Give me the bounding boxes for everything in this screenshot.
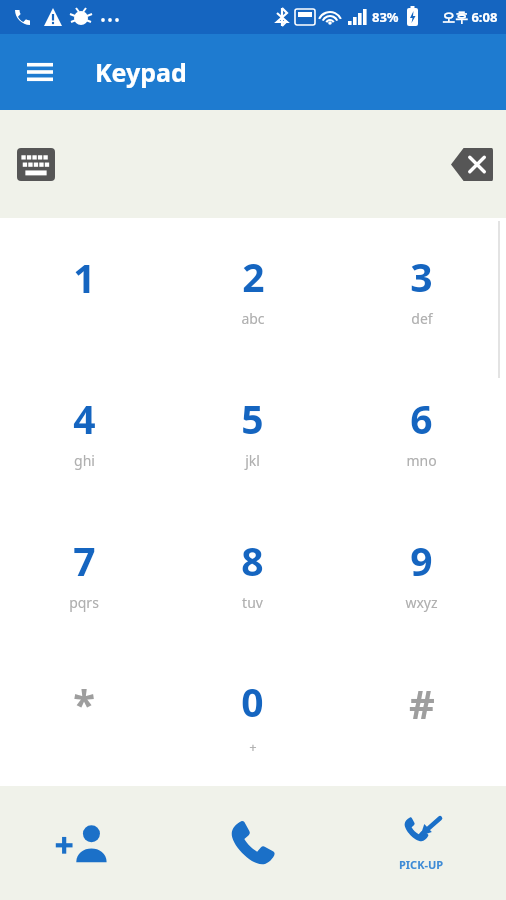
staticText: PICK-UP [399, 857, 444, 872]
staticText: 0 [241, 675, 264, 728]
button[interactable]: 6 [337, 360, 506, 502]
staticText: wxyz [405, 593, 438, 612]
staticText: 5 [241, 392, 264, 445]
button[interactable]: 8 [168, 502, 337, 644]
staticText: Keypad [95, 55, 187, 89]
button[interactable]: 4 [0, 360, 168, 502]
staticText: 83% [372, 8, 399, 26]
staticText: # [409, 676, 435, 730]
button[interactable]: Backspace [446, 138, 498, 190]
button[interactable]: 7 [0, 502, 168, 644]
button[interactable]: 5 [168, 360, 337, 502]
staticText: 오후 6:08 [442, 8, 498, 26]
staticText: mno [406, 451, 437, 470]
staticText: 4 [73, 392, 96, 445]
staticText: 2 [242, 250, 265, 303]
button[interactable]: Pick up call [337, 786, 506, 900]
button[interactable]: 9 [337, 502, 506, 644]
staticText: tuv [242, 593, 263, 612]
staticText: ghi [74, 451, 95, 470]
staticText: 9 [410, 534, 433, 587]
button[interactable]: Show keyboard [10, 138, 62, 190]
staticText: jkl [245, 451, 260, 470]
button[interactable]: Open navigation menu [16, 48, 64, 96]
staticText: abc [241, 309, 265, 328]
button[interactable]: Call [168, 786, 337, 900]
staticText: 1 [73, 251, 96, 304]
staticText: * [73, 676, 95, 730]
staticText: 6 [410, 392, 433, 445]
staticText: 8 [241, 534, 264, 587]
button[interactable]: 2 [168, 218, 337, 360]
staticText: def [411, 309, 433, 328]
staticText: pqrs [69, 593, 99, 612]
button[interactable]: 3 [337, 218, 506, 360]
button[interactable]: Add contact [0, 786, 168, 900]
staticText: + [249, 738, 257, 756]
button[interactable]: # [337, 644, 506, 786]
button[interactable]: 0 [168, 644, 337, 786]
staticText: 3 [410, 250, 433, 303]
button[interactable]: * [0, 644, 168, 786]
staticText: 7 [73, 534, 96, 587]
button[interactable]: 1 [0, 218, 168, 360]
